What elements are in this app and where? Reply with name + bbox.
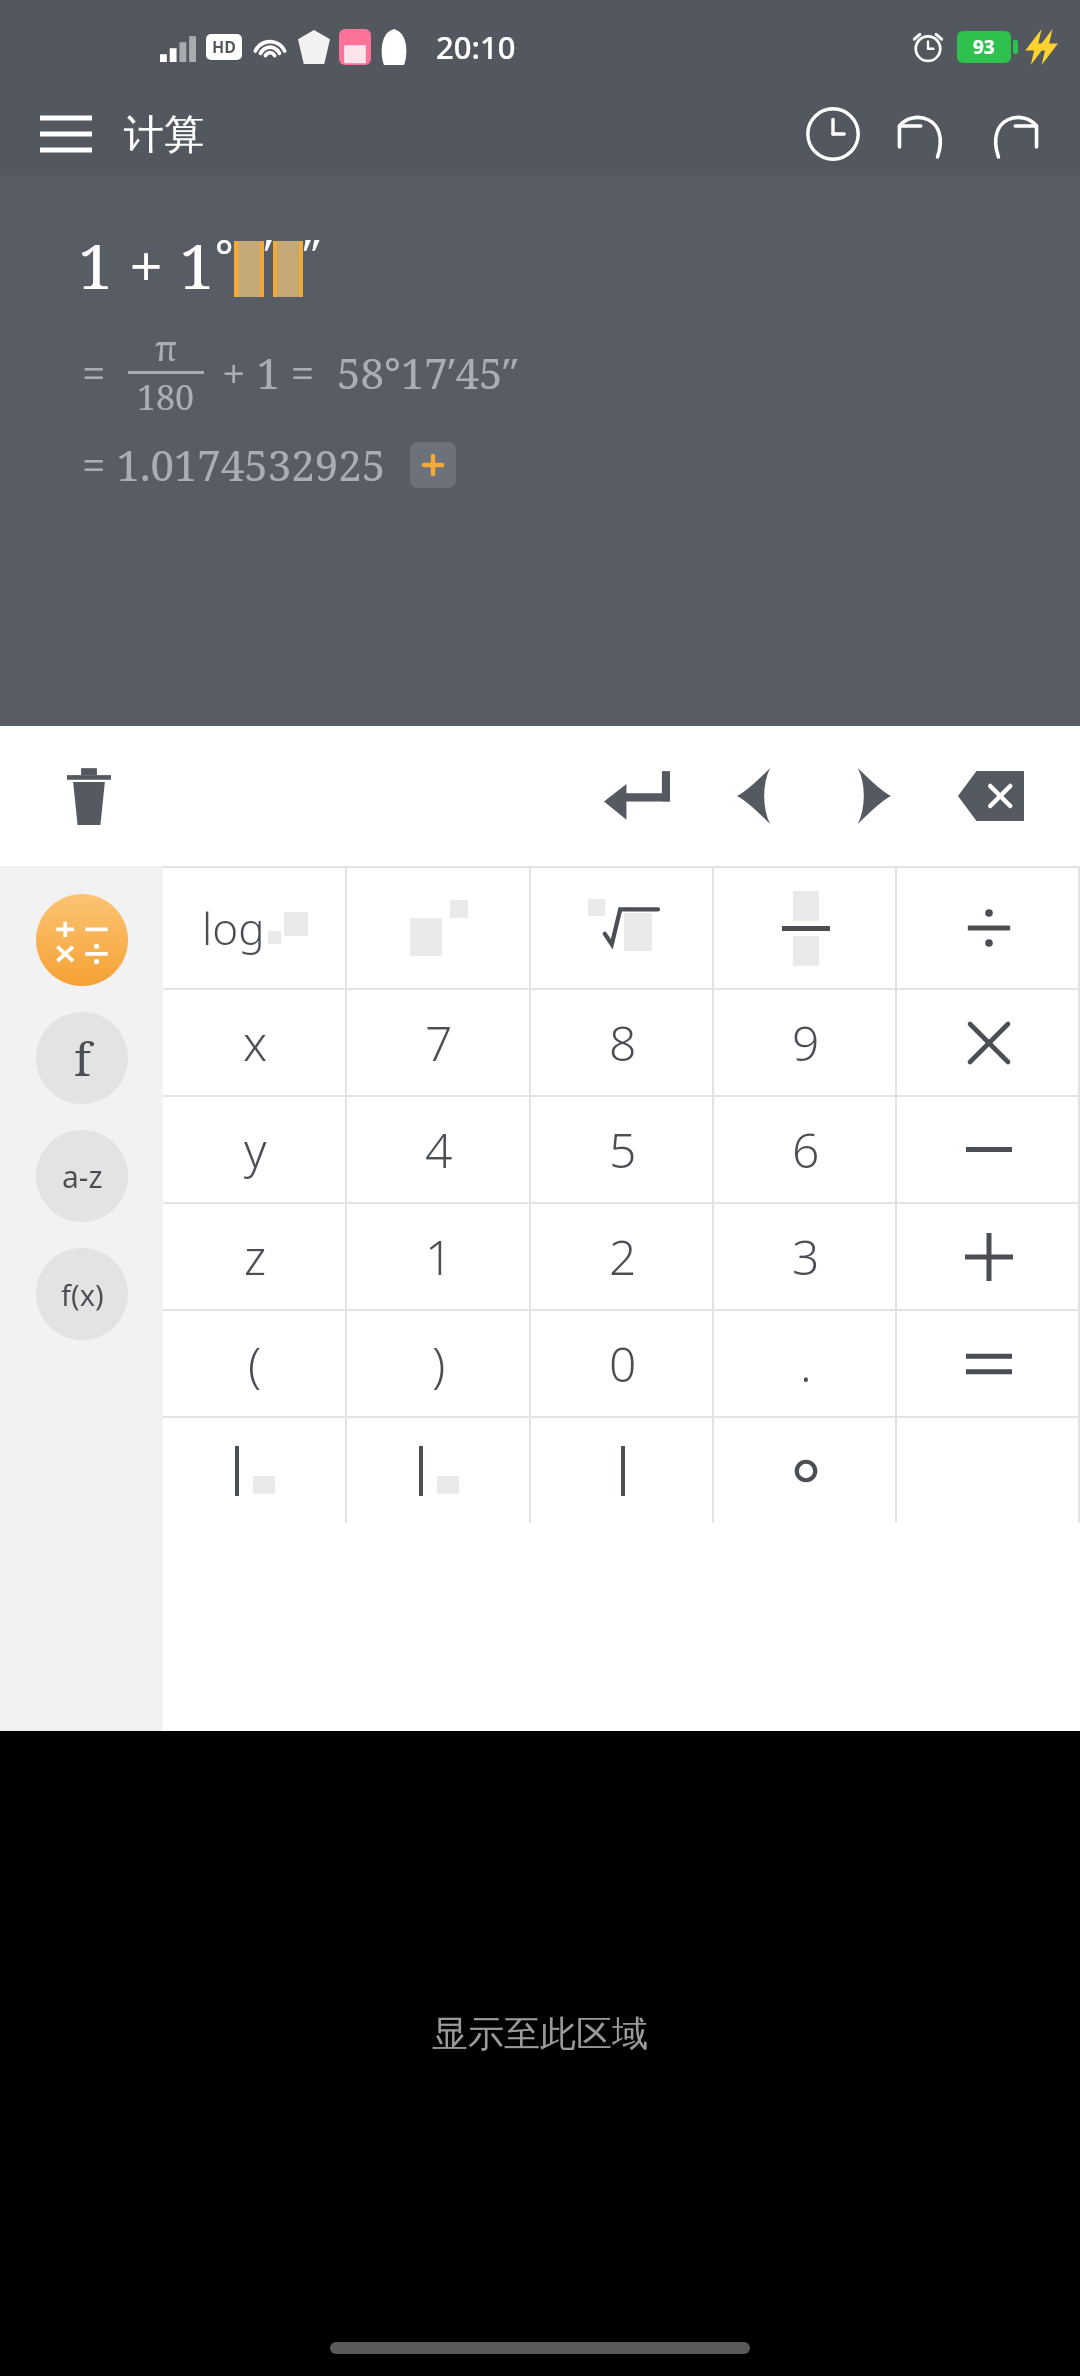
button[interactable]: Enter [578,737,696,855]
button[interactable]: Move left [696,737,814,855]
button[interactable]: 7 [347,990,531,1095]
staticText: 93 [973,34,995,60]
staticText: y [244,1117,267,1182]
staticText: 7 [425,1010,453,1075]
button[interactable]: Menu [28,96,104,172]
staticText: 3 [792,1224,820,1289]
staticText: 显示至此区域 [432,2011,648,2056]
button[interactable] [897,1097,1080,1202]
button[interactable]: Undo [878,93,968,175]
button[interactable] [36,894,128,986]
button[interactable]: 9 [714,990,897,1095]
staticText: 20:10 [436,26,516,68]
button[interactable]: 2 [531,1204,714,1309]
button[interactable] [531,1418,714,1523]
staticText: 计算 [124,109,204,159]
staticText: 4 [425,1117,453,1182]
button[interactable]: 5 [531,1097,714,1202]
button[interactable] [897,868,1080,988]
button[interactable] [531,868,714,988]
button[interactable]: Redo [968,93,1058,175]
button[interactable]: . [714,1311,897,1416]
staticText: x [243,1010,268,1075]
button[interactable]: 0 [531,1311,714,1416]
staticText: ° [215,224,234,287]
button[interactable]: f [36,1012,128,1104]
button[interactable] [347,1418,531,1523]
staticText: 58°17′45″ [337,344,519,401]
button[interactable]: y [163,1097,347,1202]
staticText: ) [432,1331,446,1396]
button[interactable]: a-z [36,1130,128,1222]
button[interactable] [897,990,1080,1095]
button[interactable]: z [163,1204,347,1309]
button[interactable]: 6 [714,1097,897,1202]
staticText: ( [248,1331,262,1396]
button[interactable]: 1 [347,1204,531,1309]
staticText: = [82,344,106,401]
button[interactable]: x [163,990,347,1095]
staticText: . [800,1331,812,1396]
button[interactable]: Backspace [932,737,1050,855]
button[interactable]: Clear [44,751,134,841]
staticText: z [244,1224,267,1289]
staticText: 5 [609,1117,637,1182]
button[interactable]: Move right [814,737,932,855]
button[interactable] [347,868,531,988]
staticText: + 1 = [222,344,315,401]
staticText: ′ [264,224,273,287]
staticText: 8 [609,1010,637,1075]
staticText: 1 [425,1224,453,1289]
staticText: 2 [609,1224,637,1289]
button[interactable]: 3 [714,1204,897,1309]
button[interactable] [897,1311,1080,1416]
button[interactable]: ( [163,1311,347,1416]
staticText: 0 [609,1331,637,1396]
staticText: f(x) [61,1275,104,1314]
staticText: a-z [62,1156,103,1197]
button[interactable] [897,1204,1080,1309]
staticText: 6 [792,1117,820,1182]
staticText: HD [212,36,236,58]
button[interactable]: Show more digits [410,442,456,488]
button[interactable] [714,1418,897,1523]
button[interactable]: 4 [347,1097,531,1202]
staticText: 180 [137,374,195,420]
button[interactable]: log [163,868,347,988]
button[interactable]: f(x) [36,1248,128,1340]
staticText: = 1.0174532925 [82,436,386,493]
staticText: log [202,898,265,958]
button[interactable]: ) [347,1311,531,1416]
staticText: 1 + 1 [78,223,215,307]
button[interactable]: 8 [531,990,714,1095]
staticText: ″ [303,224,321,287]
staticText: π [155,325,178,371]
staticText: 9 [792,1010,820,1075]
button[interactable] [163,1418,347,1523]
button[interactable]: History [788,93,878,175]
button[interactable] [714,868,897,988]
staticText: f [74,1027,91,1090]
